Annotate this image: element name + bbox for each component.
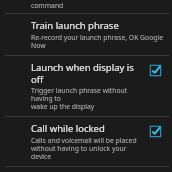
staticText: Launch when display is off xyxy=(31,61,144,85)
button[interactable]: Launch when display is off xyxy=(0,58,172,116)
staticText: Train launch phrase xyxy=(31,19,119,32)
other: Enabled xyxy=(149,125,162,138)
staticText: Trigger launch phrase without having to … xyxy=(31,86,144,111)
staticText: command xyxy=(31,1,64,10)
staticText: Calls and voicemail will be placed witho… xyxy=(31,136,144,161)
button[interactable]: Call while locked xyxy=(0,119,172,166)
other: Enabled xyxy=(149,64,162,77)
button[interactable]: command xyxy=(0,0,172,13)
button[interactable]: Train launch phrase xyxy=(0,16,172,55)
staticText: Call while locked xyxy=(31,122,105,135)
staticText: Re-record your launch phrase, OK Google … xyxy=(31,33,164,50)
